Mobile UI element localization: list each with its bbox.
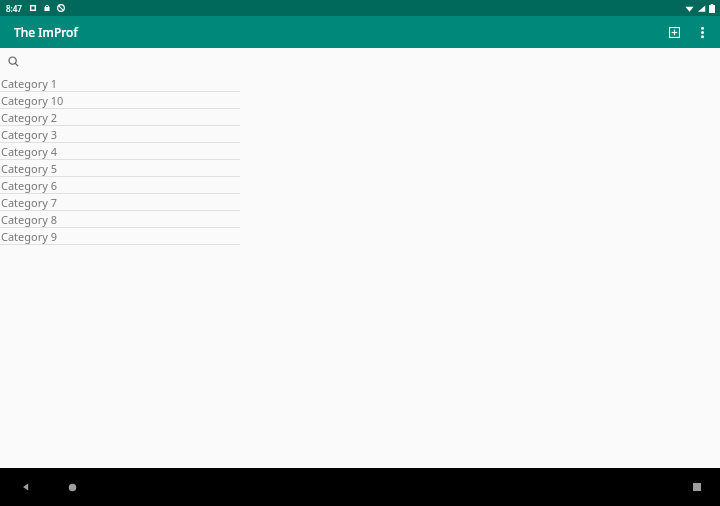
- staticText: Category 3: [1, 127, 58, 142]
- staticText: Category 6: [1, 178, 58, 193]
- button[interactable]: More options: [688, 18, 716, 46]
- button[interactable]: Category 7: [0, 194, 240, 211]
- button[interactable]: Recent apps: [681, 471, 713, 503]
- button[interactable]: Category 9: [0, 228, 240, 245]
- button[interactable]: Back: [10, 471, 42, 503]
- staticText: Category 7: [1, 195, 58, 210]
- staticText: Category 5: [1, 161, 58, 176]
- button[interactable]: Category 4: [0, 143, 240, 160]
- button[interactable]: Category 10: [0, 92, 240, 109]
- staticText: Category 4: [1, 144, 58, 159]
- staticText: Category 10: [1, 93, 64, 108]
- staticText: 8:47: [6, 3, 22, 14]
- button[interactable]: Category 2: [0, 109, 240, 126]
- button[interactable]: Category 3: [0, 126, 240, 143]
- button[interactable]: Category 6: [0, 177, 240, 194]
- staticText: The ImProf: [14, 24, 78, 40]
- staticText: Category 2: [1, 110, 58, 125]
- button[interactable]: Category 5: [0, 160, 240, 177]
- button[interactable]: Add: [660, 18, 688, 46]
- button[interactable]: Home: [56, 471, 88, 503]
- staticText: Category 1: [1, 76, 58, 91]
- staticText: Category 9: [1, 229, 58, 244]
- button[interactable]: Category 1: [0, 75, 240, 92]
- button[interactable]: Category 8: [0, 211, 240, 228]
- button[interactable]: Search: [0, 48, 240, 75]
- staticText: Category 8: [1, 212, 58, 227]
